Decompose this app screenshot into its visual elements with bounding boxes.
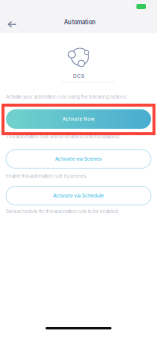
staticText: Automation — [64, 19, 96, 25]
staticText: Enable this automation rule by scenes. — [6, 173, 87, 179]
staticText: This automation rule will be enabled unt… — [6, 134, 120, 139]
button[interactable]: Back — [3, 17, 21, 31]
button[interactable]: Activate via Schedule — [6, 186, 151, 205]
staticText: DCS — [73, 73, 84, 79]
button[interactable]: Activate Now — [6, 109, 151, 129]
staticText: Set a schedule for this automation rule … — [6, 209, 119, 214]
staticText: Activate Now — [62, 116, 94, 122]
staticText: Activate via Schedule — [53, 193, 104, 198]
button[interactable]: Activate via Scenes — [6, 150, 151, 168]
staticText: Activate your automation rule using the … — [6, 94, 126, 100]
staticText: Activate via Scenes — [55, 156, 102, 162]
